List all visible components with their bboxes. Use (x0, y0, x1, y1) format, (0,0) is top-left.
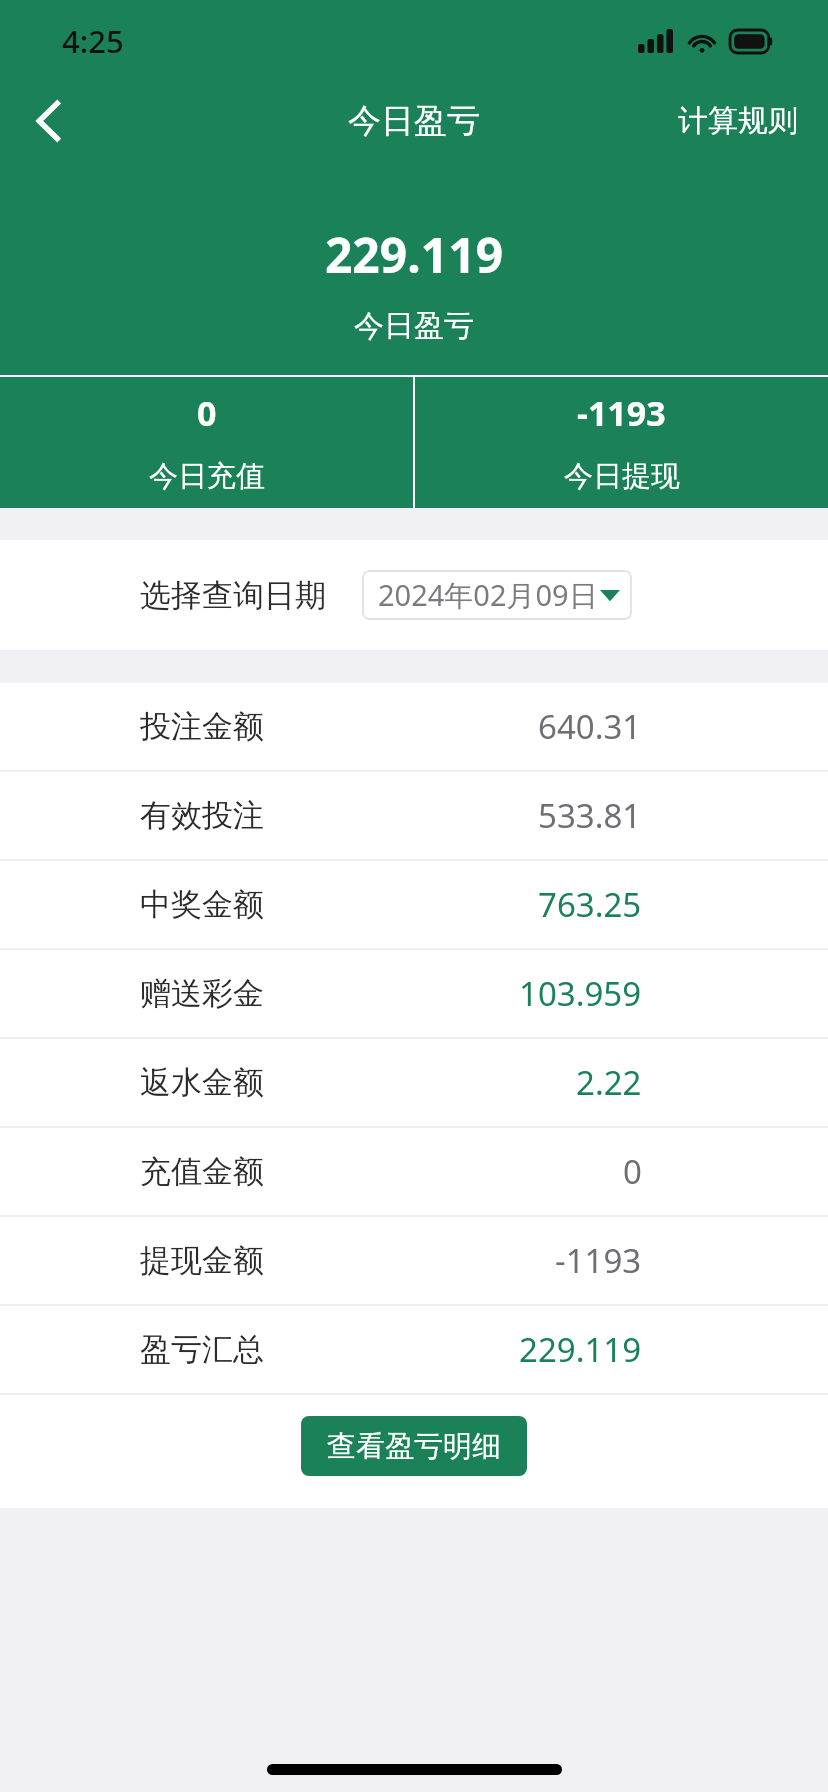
button[interactable]: 返水金额 (0, 1039, 828, 1126)
staticText: 763.25 (538, 882, 642, 927)
staticText: 0 (197, 390, 217, 436)
staticText: 查看盈亏明细 (327, 1428, 501, 1465)
staticText: 盈亏汇总 (140, 1330, 264, 1369)
staticText: 今日盈亏 (348, 100, 480, 142)
staticText: 0 (623, 1149, 642, 1194)
staticText: 提现金额 (140, 1241, 264, 1280)
staticText: -1193 (577, 390, 666, 436)
staticText: 选择查询日期 (140, 576, 326, 615)
button[interactable]: 盈亏汇总 (0, 1306, 828, 1393)
button[interactable]: 有效投注 (0, 772, 828, 859)
staticText: 229.119 (519, 1327, 642, 1372)
staticText: 计算规则 (678, 102, 798, 140)
staticText: 返水金额 (140, 1063, 264, 1102)
staticText: 今日盈亏 (0, 307, 828, 345)
button[interactable]: 充值金额 (0, 1128, 828, 1215)
staticText: -1193 (555, 1238, 642, 1283)
staticText: 2.22 (576, 1060, 642, 1105)
staticText: 533.81 (538, 793, 642, 838)
button[interactable]: -1193 (415, 377, 828, 508)
button[interactable]: 中奖金额 (0, 861, 828, 948)
staticText: 103.959 (519, 971, 642, 1016)
button[interactable]: 赠送彩金 (0, 950, 828, 1037)
button[interactable]: 选择查询日期 (0, 540, 828, 650)
staticText: 赠送彩金 (140, 974, 264, 1013)
staticText: 今日提现 (564, 458, 680, 495)
button[interactable]: 提现金额 (0, 1217, 828, 1304)
button[interactable]: 查看盈亏明细 (301, 1416, 527, 1476)
staticText: 4:25 (62, 20, 124, 62)
button[interactable]: Back (0, 82, 96, 160)
staticText: 2024年02月09日 (378, 575, 598, 615)
staticText: 229.119 (0, 222, 828, 287)
staticText: 今日充值 (149, 458, 265, 495)
staticText: 中奖金额 (140, 885, 264, 924)
staticText: 投注金额 (140, 707, 264, 746)
staticText: 有效投注 (140, 796, 264, 835)
button[interactable]: 计算规则 (648, 82, 828, 160)
button[interactable]: 投注金额 (0, 683, 828, 770)
button[interactable]: 0 (0, 377, 413, 508)
staticText: 640.31 (538, 704, 642, 749)
staticText: 充值金额 (140, 1152, 264, 1191)
